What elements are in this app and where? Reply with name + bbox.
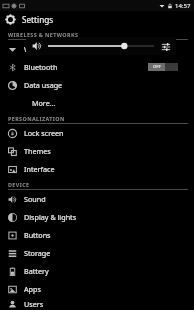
staticText: Buttons xyxy=(24,230,194,240)
button[interactable]: Users xyxy=(0,298,194,310)
button[interactable]: Buttons xyxy=(0,226,194,244)
staticText: More... xyxy=(32,98,194,108)
button[interactable]: Display & lights xyxy=(0,208,194,226)
staticText: Wi-Fi xyxy=(24,44,194,54)
button[interactable]: Volume xyxy=(26,37,176,55)
button[interactable]: Bluetooth xyxy=(0,58,194,76)
staticText: 14:57 xyxy=(175,2,191,10)
staticText: Storage xyxy=(24,248,194,258)
staticText: Data usage xyxy=(24,80,194,90)
staticText: Display & lights xyxy=(24,212,194,222)
staticText: WIRELESS & NETWORKS xyxy=(8,31,79,38)
staticText: Interface xyxy=(24,164,194,174)
other: Volume xyxy=(32,41,42,51)
button[interactable]: Battery xyxy=(0,262,194,280)
staticText: PERSONALIZATION xyxy=(8,115,65,122)
button[interactable]: Sound settings xyxy=(159,40,172,53)
button[interactable]: Lock screen xyxy=(0,124,194,142)
staticText: Bluetooth xyxy=(24,62,148,72)
button[interactable]: OFF xyxy=(148,63,178,71)
button[interactable]: Wi-Fi xyxy=(0,40,194,58)
button[interactable]: Settings xyxy=(0,11,194,28)
staticText: OFF xyxy=(153,64,161,70)
button[interactable]: Sound xyxy=(0,190,194,208)
button[interactable]: Storage xyxy=(0,244,194,262)
staticText: Settings xyxy=(22,14,54,25)
staticText: Themes xyxy=(24,146,194,156)
staticText: DEVICE xyxy=(8,181,30,188)
staticText: Apps xyxy=(24,284,194,294)
staticText: Users xyxy=(24,299,194,309)
button[interactable]: More... xyxy=(0,94,194,112)
button[interactable]: Apps xyxy=(0,280,194,298)
button[interactable]: Themes xyxy=(0,142,194,160)
staticText: Battery xyxy=(24,266,194,276)
button[interactable]: Data usage xyxy=(0,76,194,94)
button[interactable]: Interface xyxy=(0,160,194,178)
staticText: Lock screen xyxy=(24,128,194,138)
staticText: Sound xyxy=(24,194,194,204)
